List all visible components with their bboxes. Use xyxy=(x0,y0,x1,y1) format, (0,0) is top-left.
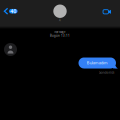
button[interactable]: FaceTime xyxy=(98,3,116,21)
staticText: Bulamadım xyxy=(87,60,108,65)
button[interactable]: Contact info xyxy=(40,2,80,24)
staticText: Bugün 13:11 xyxy=(50,34,70,37)
staticText: A xyxy=(59,18,61,22)
staticText: 40 xyxy=(10,8,16,15)
button[interactable]: Back xyxy=(0,1,24,21)
staticText: Gönderildi xyxy=(98,70,114,75)
staticText: iMessage xyxy=(54,30,66,34)
